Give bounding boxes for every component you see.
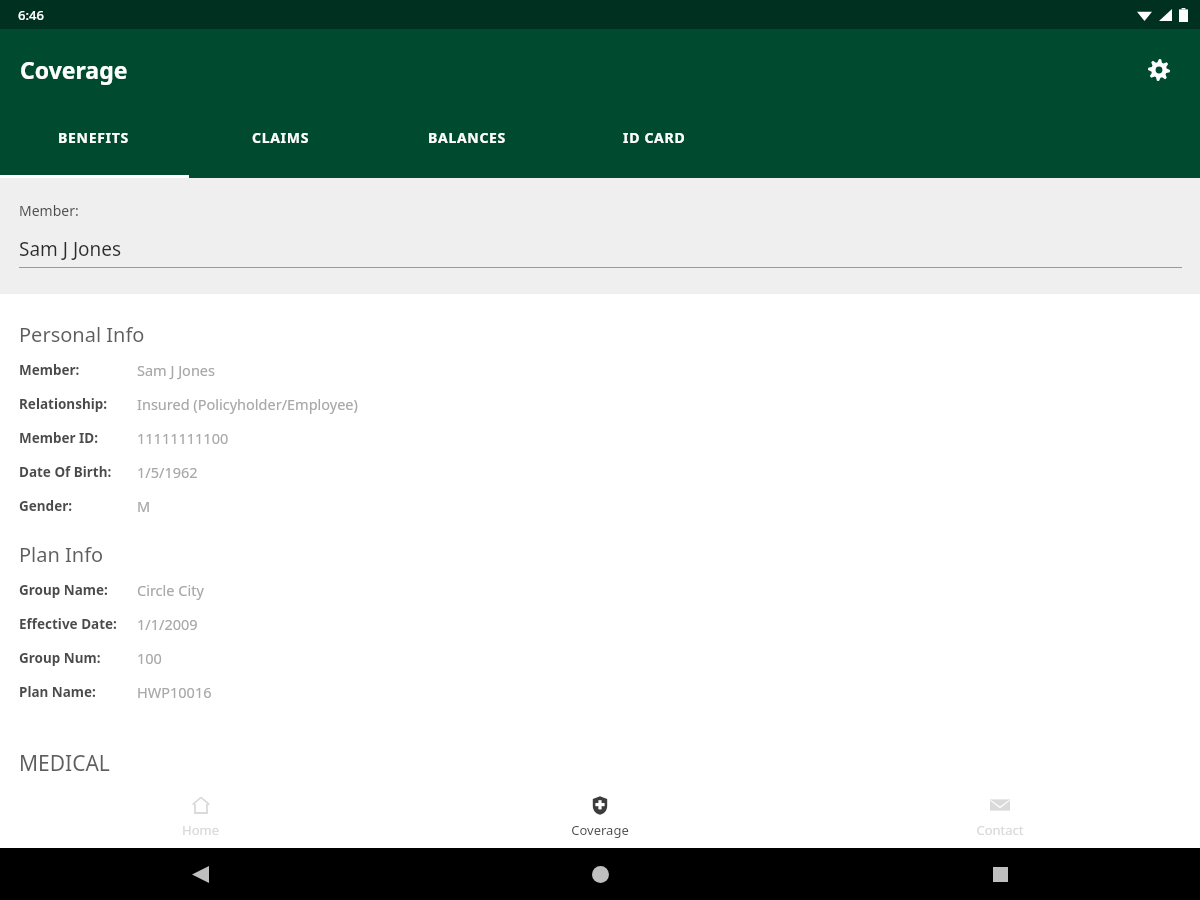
staticText: 6:46 [18,6,44,24]
staticText: 1/1/2009 [137,614,198,634]
staticText: Date Of Birth: [19,463,112,481]
button[interactable]: Back [180,854,220,894]
staticText: Sam J Jones [137,360,215,380]
staticText: Personal Info [19,321,145,348]
staticText: Effective Date: [19,615,117,633]
staticText: Relationship: [19,395,108,413]
staticText: HWP10016 [137,682,212,702]
staticText: ID CARD [623,128,686,147]
staticText: Group Name: [19,581,108,599]
staticText: Home [182,821,219,839]
staticText: MEDICAL [19,749,110,778]
button[interactable]: Sam J Jones [19,236,1182,268]
button[interactable]: Settings [1138,49,1180,91]
button[interactable]: BENEFITS [0,110,187,178]
staticText: Member: [19,361,80,379]
staticText: Plan Info [19,541,104,568]
button[interactable]: BALANCES [374,110,561,178]
staticText: BALANCES [428,128,507,147]
staticText: 100 [137,648,162,668]
staticText: Plan Name: [19,683,96,701]
staticText: Coverage [571,821,629,839]
button[interactable]: Coverage [400,785,800,848]
button[interactable]: Home [0,785,400,848]
staticText: Circle City [137,580,204,600]
staticText: Insured (Policyholder/Employee) [137,394,358,414]
staticText: CLAIMS [252,128,310,147]
staticText: Gender: [19,497,73,515]
staticText: Group Num: [19,649,101,667]
staticText: BENEFITS [58,128,129,147]
staticText: Coverage [20,54,128,85]
staticText: Member ID: [19,429,99,447]
button[interactable]: Contact [800,785,1200,848]
staticText: Contact [976,821,1024,839]
button[interactable]: Home [580,854,620,894]
staticText: 11111111100 [137,428,229,448]
button[interactable]: ID CARD [561,110,748,178]
staticText: Sam J Jones [19,236,122,262]
staticText: 1/5/1962 [137,462,198,482]
button[interactable]: Recent apps [980,854,1020,894]
staticText: M [137,496,151,516]
staticText: Member: [19,201,79,220]
button[interactable]: CLAIMS [187,110,374,178]
